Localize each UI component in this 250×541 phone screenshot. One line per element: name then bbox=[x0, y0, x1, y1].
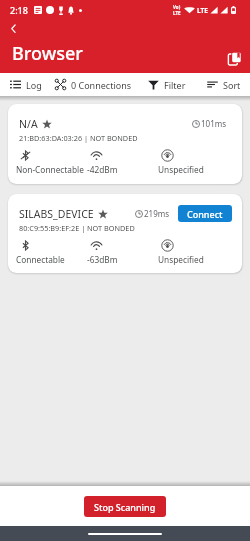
staticText: Connectable bbox=[16, 254, 65, 265]
staticText: 21:BD:63:DA:03:26 | NOT BONDED bbox=[19, 133, 138, 143]
staticText: Unspecified bbox=[158, 164, 204, 175]
button[interactable]: N/A bbox=[8, 104, 242, 184]
button[interactable]: Log bbox=[0, 73, 51, 96]
button[interactable]: Connect bbox=[178, 205, 232, 222]
staticText: 101ms bbox=[201, 118, 227, 129]
staticText: Vo) bbox=[173, 4, 181, 10]
staticText: Connect bbox=[187, 208, 223, 220]
staticText: 80:C9:55:B9:EF:2E | NOT BONDED bbox=[19, 223, 135, 233]
button[interactable]: Favorite bbox=[98, 209, 108, 219]
button[interactable]: Sort bbox=[198, 73, 250, 96]
staticText: Log bbox=[26, 79, 42, 91]
staticText: 0 Connections bbox=[71, 79, 132, 91]
button[interactable]: Stop Scanning bbox=[84, 496, 166, 517]
staticText: LTE bbox=[173, 10, 181, 16]
staticText: SILABS_DEVICE bbox=[19, 207, 94, 221]
button[interactable]: 0 Connections bbox=[51, 73, 135, 96]
staticText: Unspecified bbox=[158, 254, 204, 265]
staticText: 2:18 bbox=[10, 4, 28, 16]
staticText: Stop Scanning bbox=[94, 501, 156, 513]
staticText: Sort bbox=[223, 79, 241, 91]
staticText: 219ms bbox=[144, 208, 170, 219]
button[interactable]: Favorite bbox=[42, 119, 52, 129]
button[interactable]: Filter bbox=[135, 73, 198, 96]
staticText: Filter bbox=[164, 79, 186, 91]
button[interactable]: Back bbox=[5, 20, 21, 36]
button[interactable]: Saved devices bbox=[228, 52, 241, 65]
staticText: -63dBm bbox=[87, 254, 118, 265]
staticText: Browser bbox=[12, 41, 83, 66]
staticText: N/A bbox=[19, 117, 38, 131]
staticText: -42dBm bbox=[87, 164, 118, 175]
staticText: Non-Connectable bbox=[16, 164, 84, 175]
button[interactable]: SILABS_DEVICE bbox=[8, 194, 242, 273]
staticText: LTE bbox=[197, 6, 208, 15]
